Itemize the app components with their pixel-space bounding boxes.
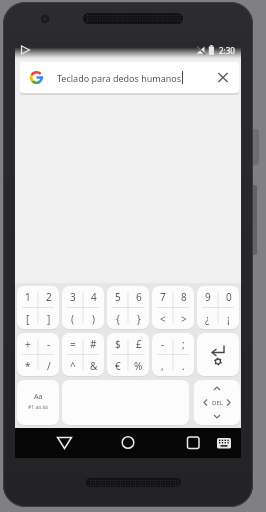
staticText: % [134,359,143,373]
staticText: 0 [226,290,232,304]
staticText: 9 [205,290,211,304]
button[interactable] [197,333,239,376]
staticText: [ [26,312,30,326]
staticText: 2 [46,290,52,304]
button[interactable]: $ [107,333,149,376]
staticText: 7 [160,290,166,304]
button[interactable]: - [152,333,194,376]
staticText: - [161,337,165,351]
staticText: > [181,312,187,326]
staticText: # [90,337,97,351]
button[interactable]: Aa [17,380,59,425]
staticText: $ [115,337,121,351]
staticText: ¿ [205,312,210,326]
staticText: ( [71,312,74,326]
staticText: 3 [70,290,76,304]
staticText: 8 [181,290,187,304]
button[interactable]: 3 [62,286,104,329]
button[interactable] [179,431,207,455]
staticText: 5 [115,290,121,304]
staticText: Teclado para dedos humanos [57,72,182,84]
staticText: - [47,337,51,351]
button[interactable]: 9 [197,286,239,329]
button[interactable] [213,431,237,455]
button[interactable]: DEL [194,380,240,425]
staticText: 4 [91,290,97,304]
staticText: ) [92,312,95,326]
staticText: = [70,337,76,351]
staticText: DEL [212,399,223,407]
staticText: 2:30 [219,45,235,56]
staticText: * [25,359,31,373]
staticText: £ [136,337,142,351]
staticText: #1 aa áà [28,404,48,411]
staticText: € [115,359,121,373]
button[interactable] [114,431,142,455]
staticText: ^ [70,359,76,373]
staticText: 6 [136,290,142,304]
staticText: + [25,337,31,351]
staticText: 1 [25,290,31,304]
button[interactable]: + [17,333,59,376]
button[interactable]: 5 [107,286,149,329]
button[interactable] [51,431,78,455]
staticText: , [161,359,164,373]
staticText: & [90,359,98,373]
staticText: ; [182,337,185,351]
button[interactable]: 7 [152,286,194,329]
button[interactable]: 1 [17,286,59,329]
button[interactable]: = [62,333,104,376]
staticText: / [47,359,51,373]
staticText: Aa [34,392,43,402]
staticText: ] [47,312,51,326]
staticText: { [116,312,120,326]
button[interactable]: Teclado para dedos humanos [20,62,239,93]
staticText: . [182,359,185,373]
staticText: } [137,312,141,326]
staticText: ¡ [227,312,230,326]
staticText: < [160,312,166,326]
